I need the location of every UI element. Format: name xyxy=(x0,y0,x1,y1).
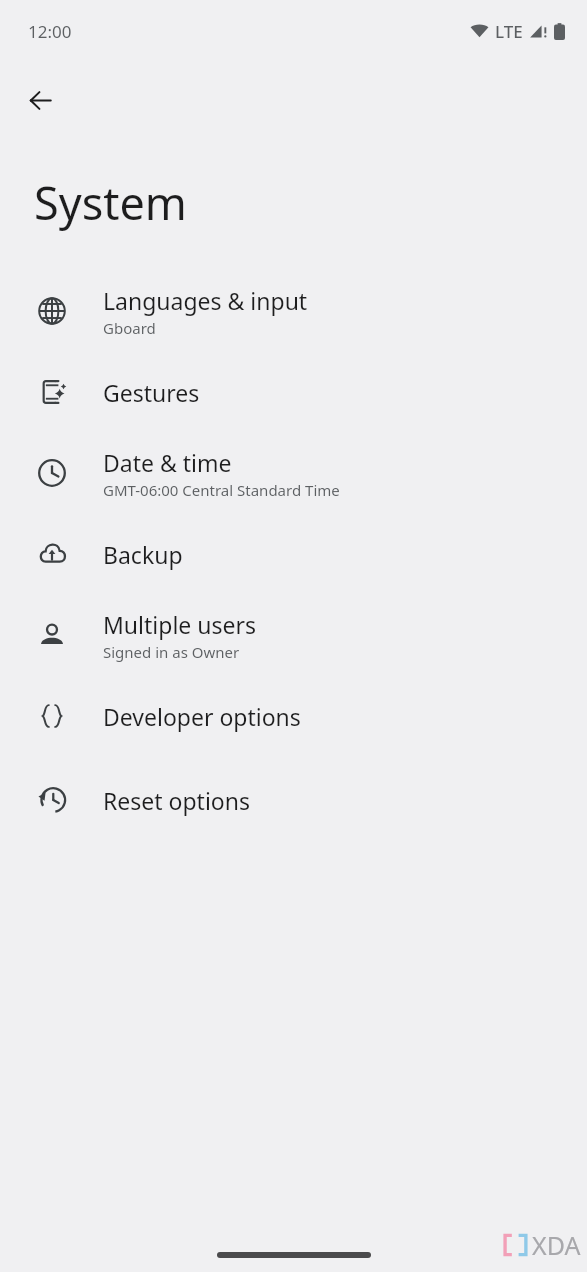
staticText: XDA xyxy=(532,1228,581,1262)
staticText: Multiple users xyxy=(103,609,256,640)
staticText: Gboard xyxy=(103,318,156,338)
button[interactable]: Date & time xyxy=(0,434,587,512)
staticText: Languages & input xyxy=(103,285,308,316)
button[interactable]: Multiple users xyxy=(0,596,587,674)
staticText: Gestures xyxy=(103,377,200,408)
staticText: Reset options xyxy=(103,785,250,816)
staticText: LTE xyxy=(495,20,523,43)
button[interactable]: Languages & input xyxy=(0,272,587,350)
staticText: Signed in as Owner xyxy=(103,642,240,662)
staticText: System xyxy=(34,172,187,233)
staticText: 12:00 xyxy=(28,20,72,43)
button[interactable]: Back xyxy=(14,74,66,126)
staticText: Developer options xyxy=(103,701,301,732)
staticText: Date & time xyxy=(103,447,232,478)
button[interactable]: Gestures xyxy=(0,350,587,434)
button[interactable]: Reset options xyxy=(0,758,587,842)
button[interactable]: Developer options xyxy=(0,674,587,758)
staticText: Backup xyxy=(103,539,183,570)
button[interactable]: Backup xyxy=(0,512,587,596)
staticText: GMT-06:00 Central Standard Time xyxy=(103,480,340,500)
